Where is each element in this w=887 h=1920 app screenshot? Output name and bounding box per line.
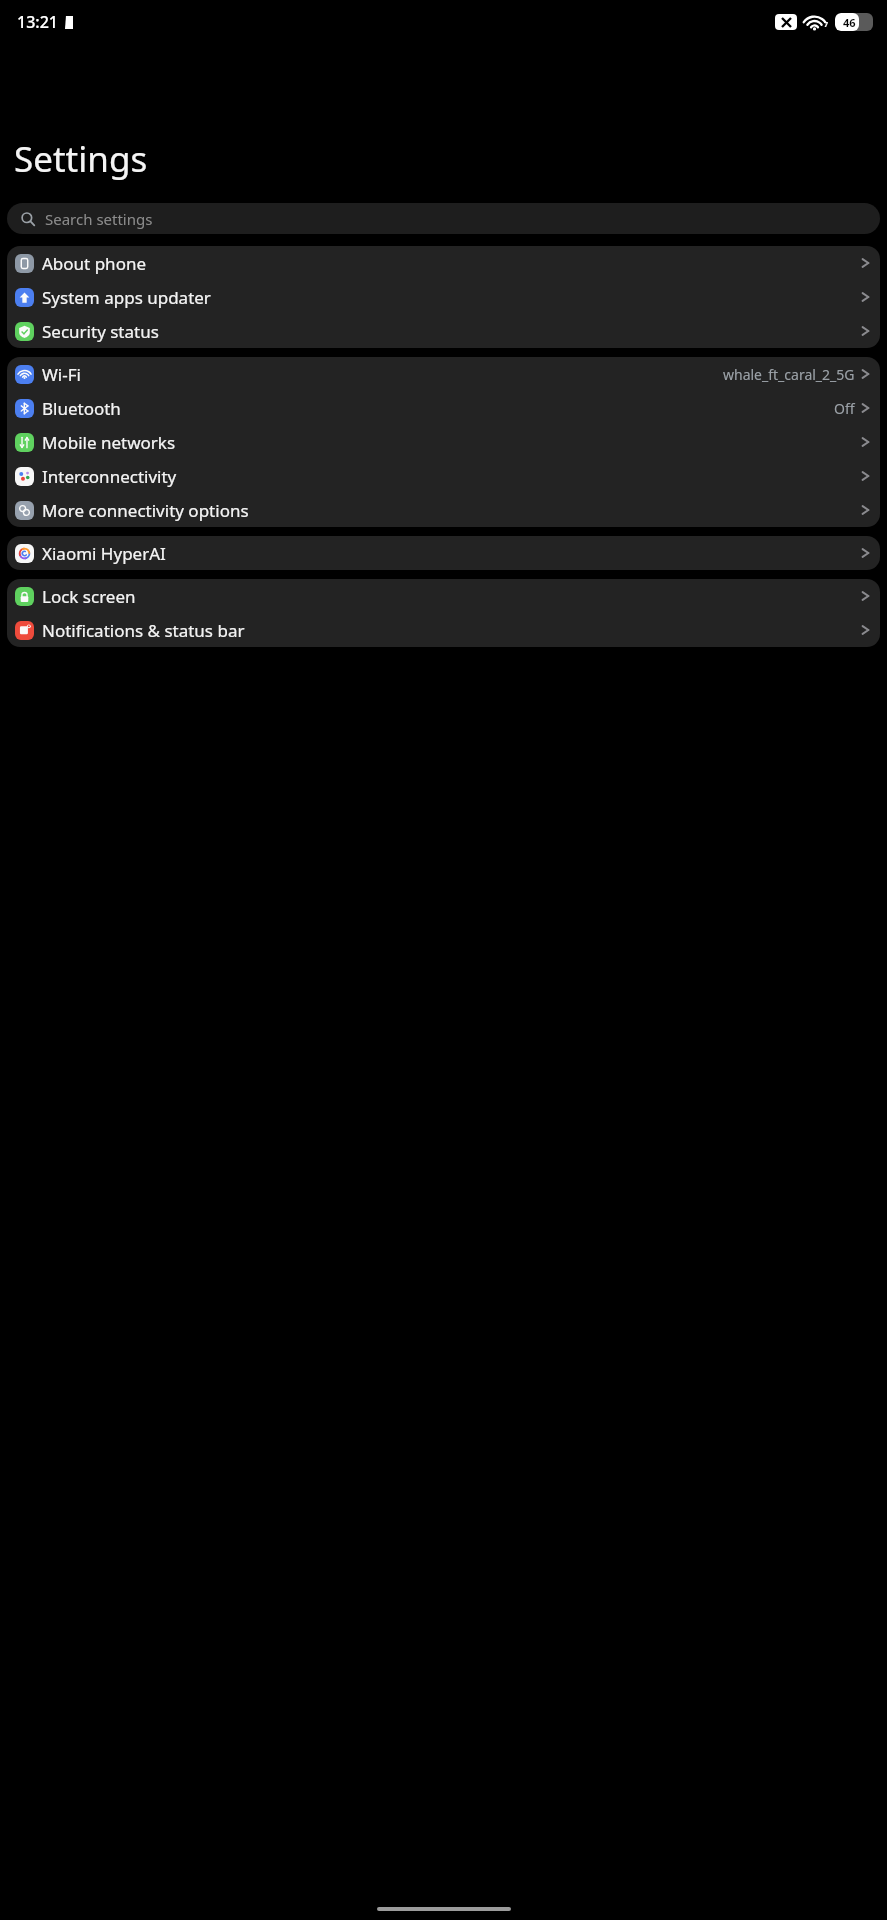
- staticText: Bluetooth: [42, 397, 121, 420]
- button[interactable]: Security status: [7, 314, 880, 348]
- staticText: Notifications & status bar: [42, 619, 245, 642]
- button[interactable]: Search settings: [7, 203, 880, 234]
- staticText: whale_ft_caral_2_5G: [723, 365, 855, 384]
- button[interactable]: About phone: [7, 246, 880, 280]
- staticText: Mobile networks: [42, 431, 176, 454]
- button[interactable]: Xiaomi HyperAI: [7, 536, 880, 570]
- staticText: Off: [834, 399, 855, 418]
- staticText: 46: [843, 15, 856, 30]
- staticText: Security status: [42, 320, 159, 343]
- staticText: Settings: [14, 135, 148, 183]
- staticText: More connectivity options: [42, 499, 249, 522]
- button[interactable]: More connectivity options: [7, 493, 880, 527]
- button[interactable]: Lock screen: [7, 579, 880, 613]
- button[interactable]: System apps updater: [7, 280, 880, 314]
- button[interactable]: Wi-Fi: [7, 357, 880, 391]
- button[interactable]: Interconnectivity: [7, 459, 880, 493]
- staticText: 7: [824, 20, 829, 30]
- staticText: Lock screen: [42, 585, 136, 608]
- button[interactable]: Mobile networks: [7, 425, 880, 459]
- staticText: System apps updater: [42, 286, 211, 309]
- staticText: 13:21: [17, 11, 58, 33]
- staticText: Search settings: [45, 209, 153, 229]
- staticText: Interconnectivity: [42, 465, 177, 488]
- button[interactable]: Notifications & status bar: [7, 613, 880, 647]
- staticText: Xiaomi HyperAI: [42, 542, 166, 565]
- staticText: Wi-Fi: [42, 363, 81, 386]
- staticText: About phone: [42, 252, 147, 275]
- button[interactable]: Bluetooth: [7, 391, 880, 425]
